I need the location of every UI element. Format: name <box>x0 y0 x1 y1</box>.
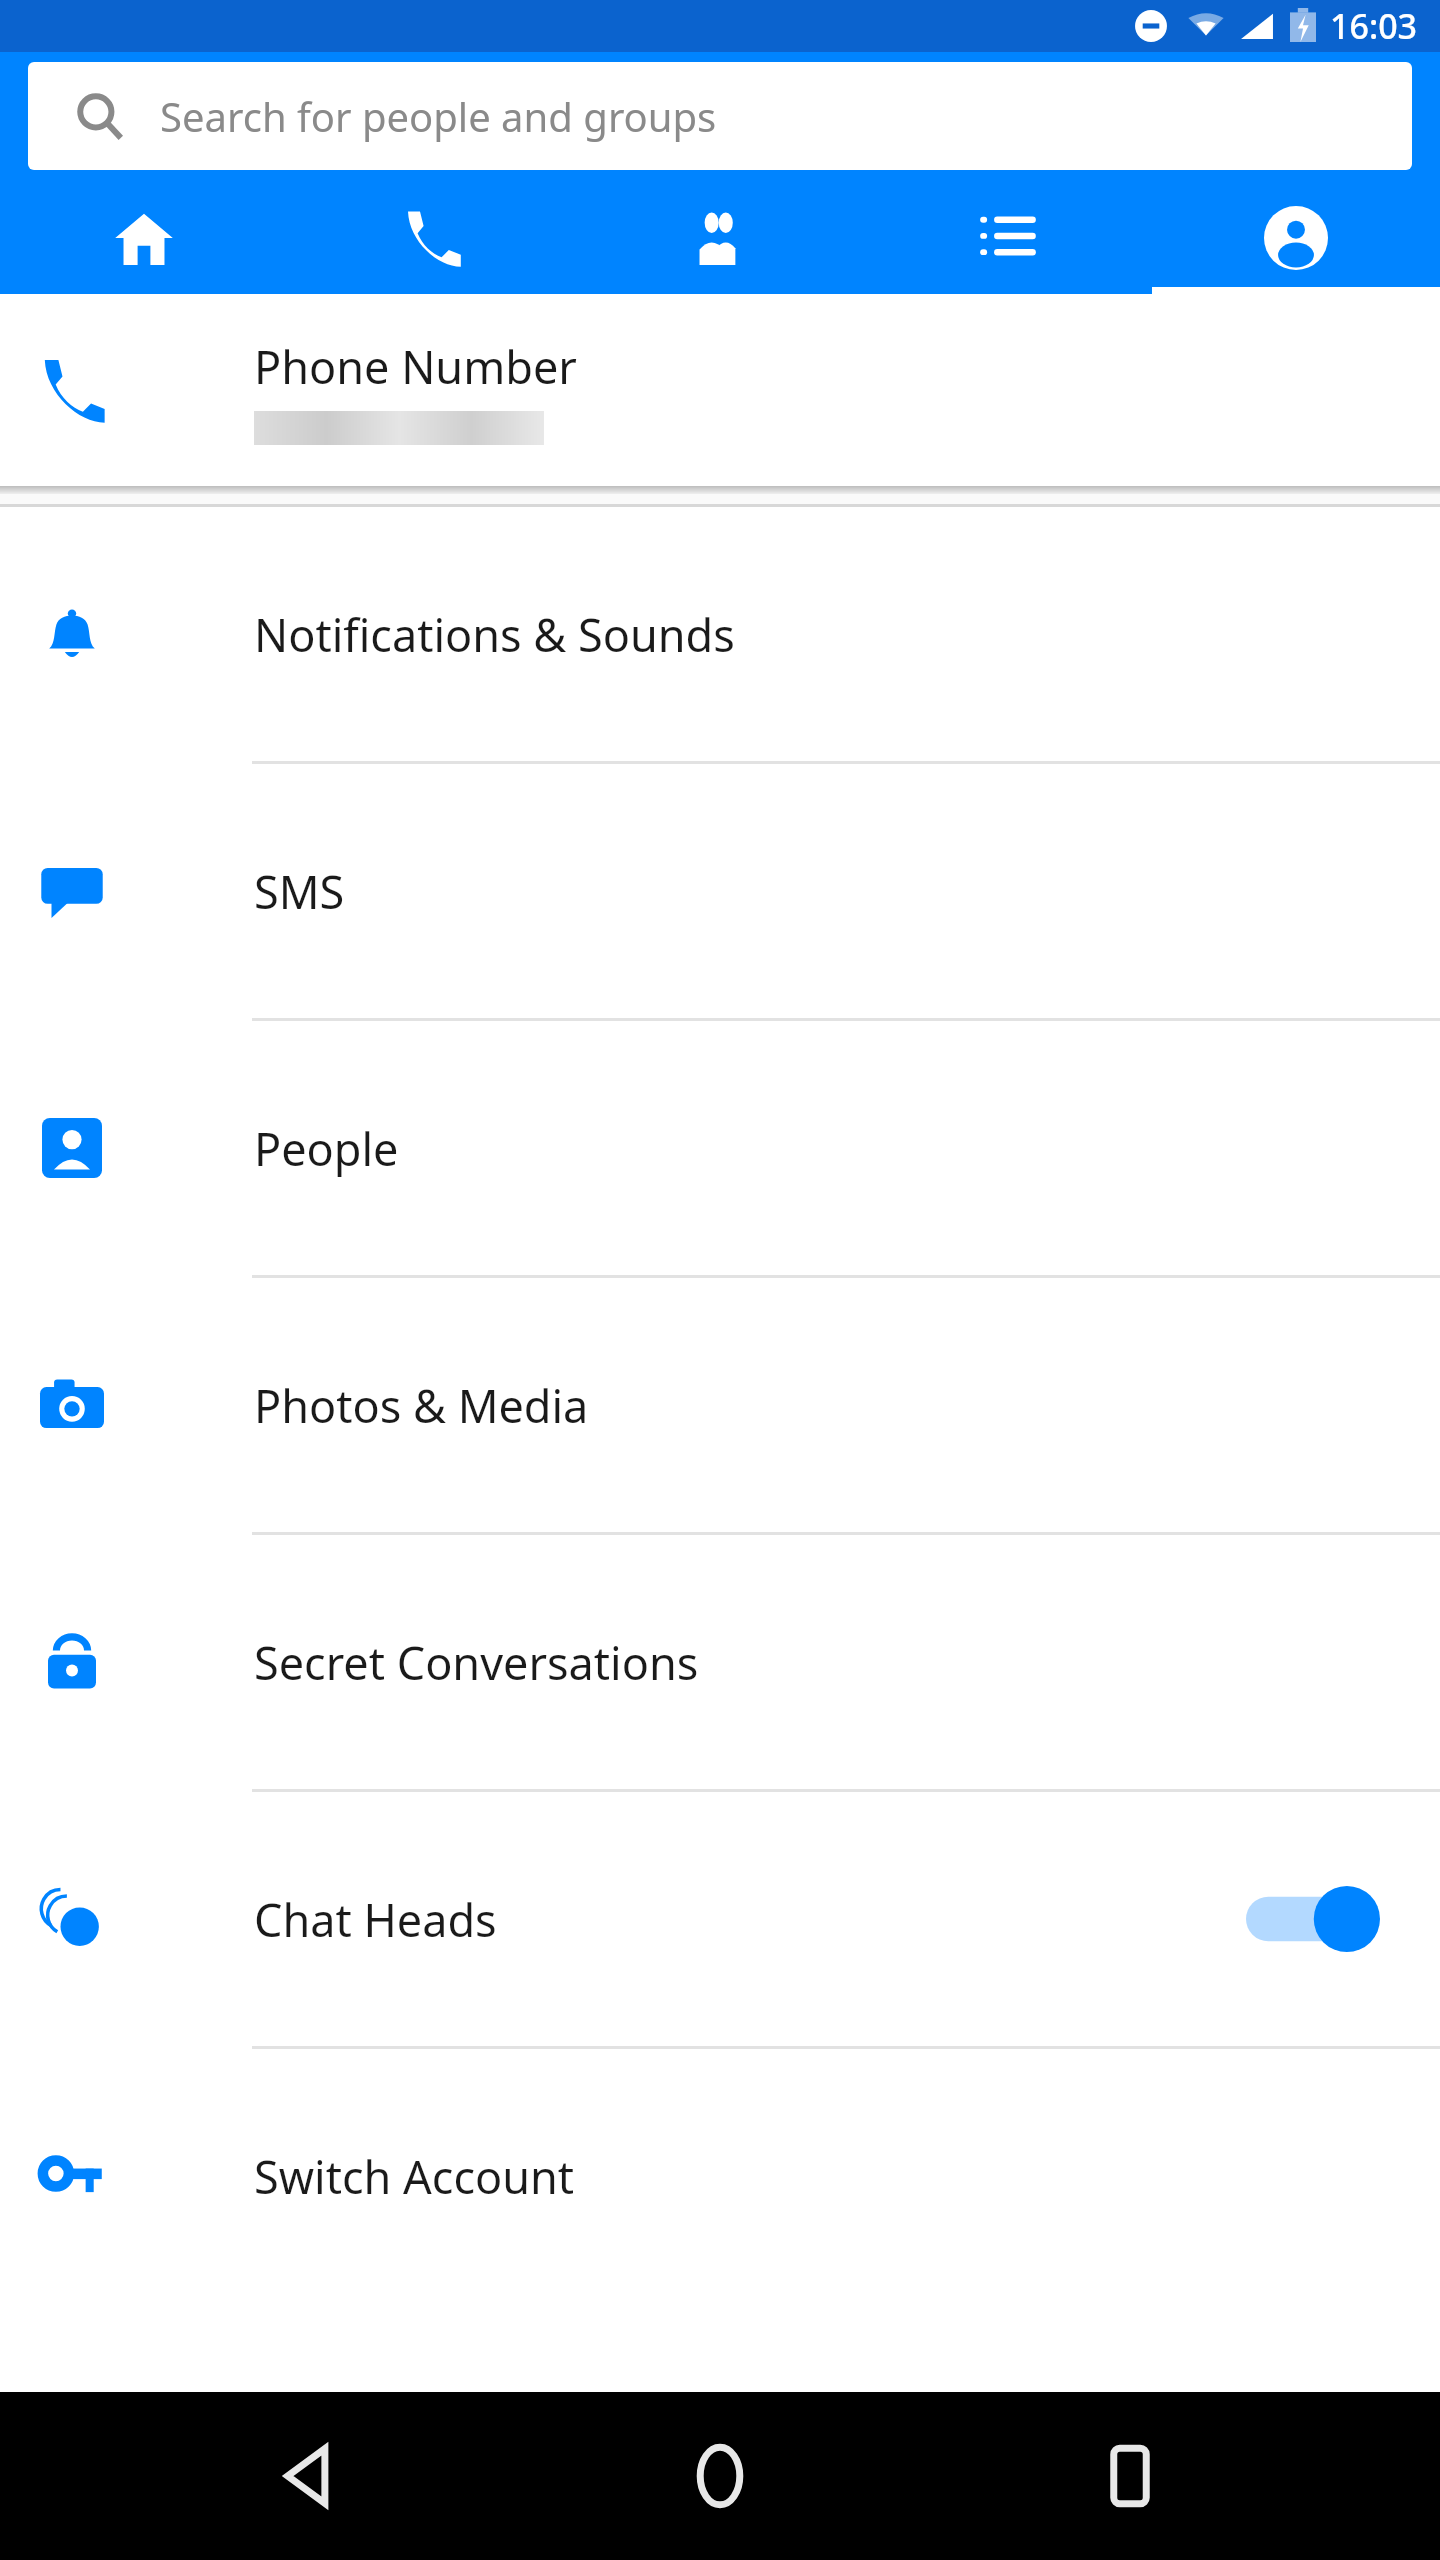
button[interactable]: Discover <box>864 188 1152 288</box>
button[interactable]: Switch Account <box>0 2049 1440 2303</box>
button[interactable]: Groups <box>576 188 864 288</box>
button[interactable]: Recent apps <box>1030 2392 1230 2560</box>
button[interactable]: SMS <box>0 764 1440 1018</box>
button[interactable]: People <box>0 1021 1440 1275</box>
button[interactable]: Search for people and groups <box>28 62 1412 170</box>
staticText: Search for people and groups <box>160 89 717 143</box>
button[interactable]: Photos & Media <box>0 1278 1440 1532</box>
button[interactable]: Chat Heads <box>0 1792 1440 2046</box>
button[interactable]: Home <box>620 2392 820 2560</box>
staticText: Notifications & Sounds <box>254 604 735 665</box>
button[interactable]: Profile <box>1152 188 1440 288</box>
staticText: Secret Conversations <box>254 1632 699 1693</box>
staticText: SMS <box>254 861 345 922</box>
staticText: People <box>254 1118 399 1179</box>
staticText: 16:03 <box>1330 3 1418 49</box>
staticText: Phone Number <box>254 336 577 397</box>
staticText: Photos & Media <box>254 1375 589 1436</box>
button[interactable]: Phone Number <box>0 294 1440 486</box>
staticText: Switch Account <box>254 2146 575 2207</box>
button[interactable]: Calls <box>288 188 576 288</box>
staticText: Chat Heads <box>254 1889 497 1950</box>
button[interactable]: Secret Conversations <box>0 1535 1440 1789</box>
button[interactable]: Home <box>0 188 288 288</box>
button[interactable]: Chat Heads toggle <box>1246 1883 1380 1955</box>
button[interactable]: Back <box>210 2392 410 2560</box>
button[interactable]: Notifications & Sounds <box>0 507 1440 761</box>
